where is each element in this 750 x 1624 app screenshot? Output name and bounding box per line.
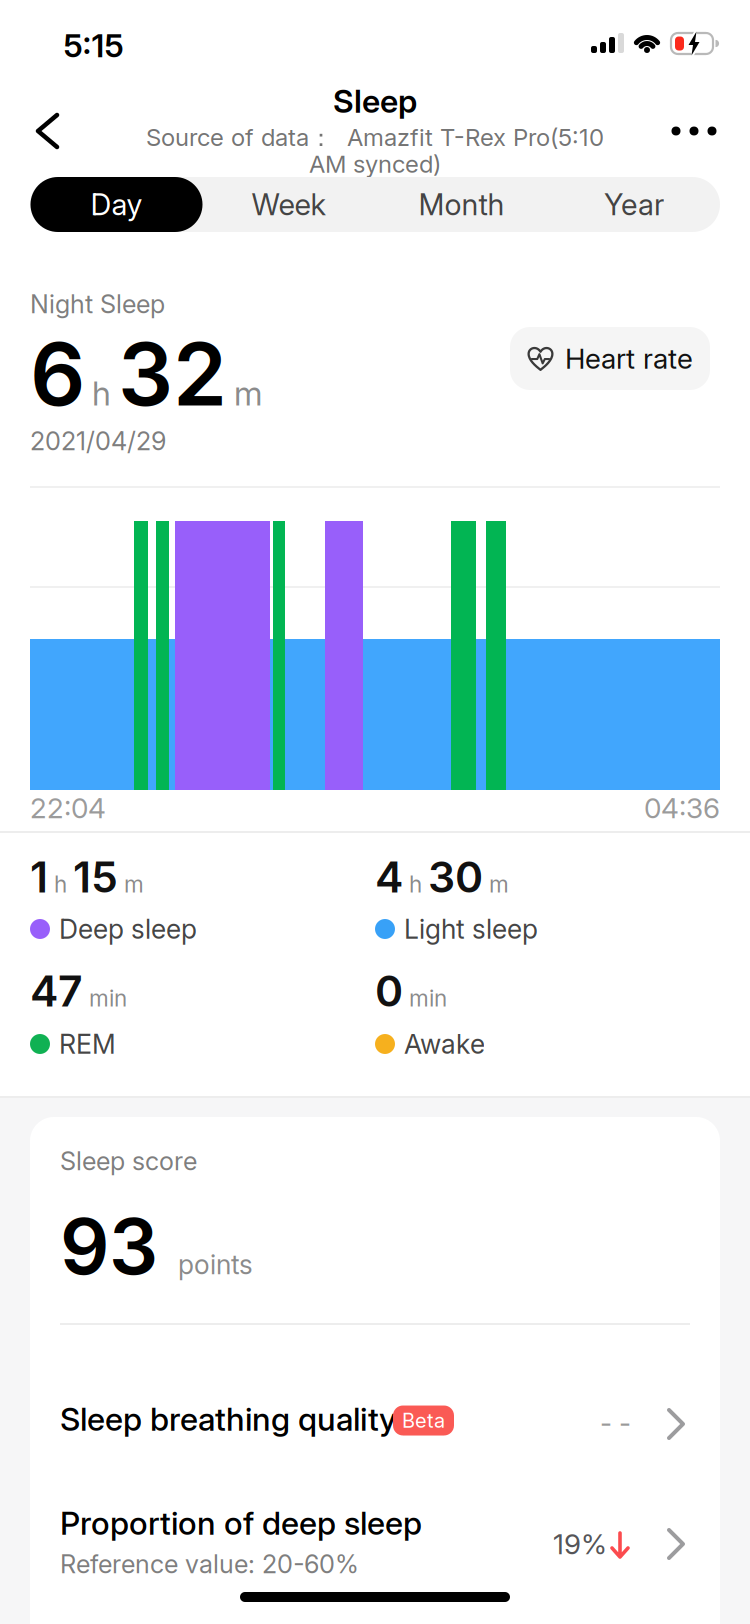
staticText: Awake: [404, 1028, 485, 1060]
staticText: Deep sleep: [59, 913, 197, 945]
staticText: 6: [30, 323, 85, 425]
staticText: 19%: [553, 1527, 607, 1560]
staticText: Month: [418, 187, 504, 222]
staticText: 1: [30, 852, 48, 902]
button[interactable]: Month: [375, 177, 547, 232]
staticText: 0: [375, 966, 403, 1016]
staticText: 93: [60, 1200, 158, 1292]
staticText: Sleep: [333, 82, 417, 120]
staticText: h: [409, 871, 422, 898]
staticText: Heart rate: [565, 342, 693, 375]
staticText: AM synced): [309, 150, 441, 178]
staticText: Proportion of deep sleep: [60, 1504, 422, 1542]
button[interactable]: Year: [548, 177, 720, 232]
staticText: 2021/04/29: [30, 426, 166, 456]
button[interactable]: Heart rate: [510, 327, 710, 390]
staticText: 5:15: [63, 27, 123, 64]
staticText: 04:36: [644, 791, 720, 824]
staticText: Sleep score: [60, 1146, 197, 1176]
staticText: 22:04: [30, 791, 106, 824]
staticText: REM: [59, 1028, 116, 1060]
button[interactable]: Week: [203, 177, 375, 232]
staticText: Day: [90, 187, 142, 222]
staticText: h: [54, 871, 67, 898]
staticText: m: [489, 871, 509, 898]
staticText: Year: [604, 187, 664, 222]
staticText: 15: [73, 852, 118, 902]
staticText: points: [178, 1249, 253, 1280]
staticText: 47: [30, 966, 83, 1016]
button[interactable]: Sleep breathing quality: [0, 0, 750, 1624]
button[interactable]: Proportion of deep sleep: [0, 0, 750, 1624]
button[interactable]: Day: [30, 177, 202, 232]
staticText: Night Sleep: [30, 289, 165, 319]
staticText: h: [92, 374, 111, 413]
staticText: 4: [375, 852, 403, 902]
button[interactable]: [0, 0, 750, 1624]
staticText: - -: [600, 1407, 631, 1439]
button[interactable]: [0, 0, 750, 1624]
staticText: min: [409, 985, 447, 1012]
staticText: m: [124, 871, 144, 898]
staticText: m: [234, 374, 262, 413]
staticText: Week: [251, 187, 326, 222]
staticText: Light sleep: [404, 913, 538, 945]
staticText: Sleep breathing quality: [60, 1400, 397, 1438]
staticText: Source of data： Amazfit T-Rex Pro(5:10: [146, 123, 604, 153]
staticText: min: [89, 985, 127, 1012]
staticText: 32: [118, 323, 227, 425]
staticText: Beta: [402, 1409, 445, 1432]
staticText: 30: [428, 852, 483, 902]
staticText: Reference value: 20-60%: [60, 1549, 359, 1579]
